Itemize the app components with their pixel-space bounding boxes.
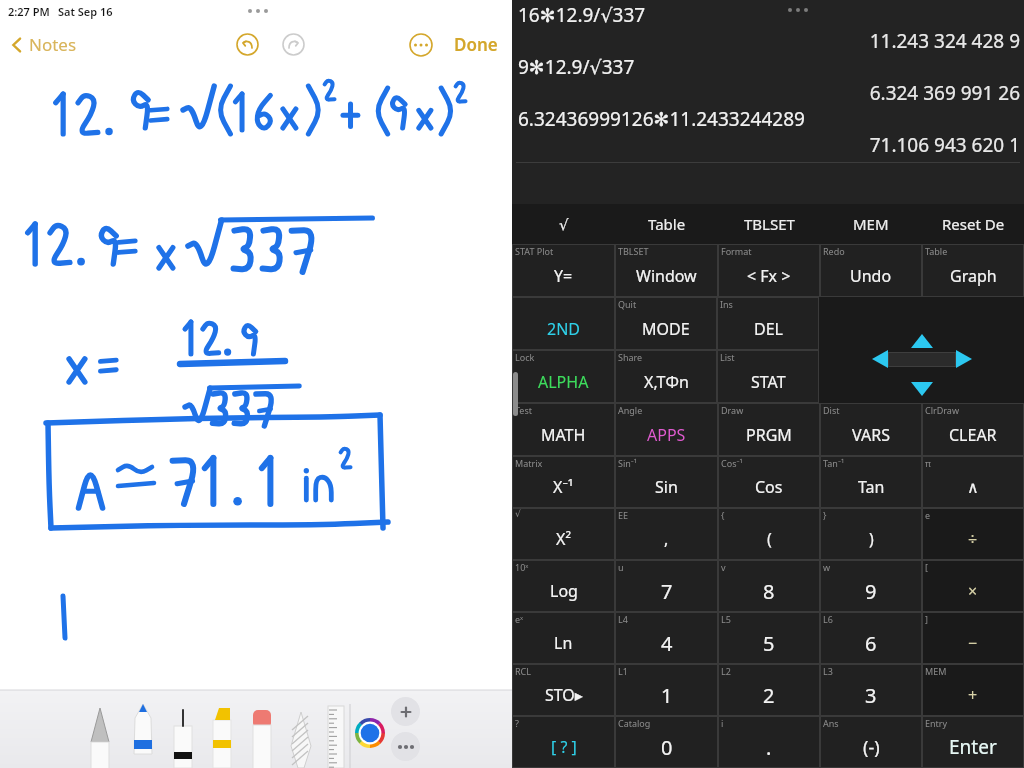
- button[interactable]: Entry: [922, 716, 1024, 768]
- staticText: w: [823, 561, 831, 573]
- button[interactable]: Sin⁻¹: [615, 456, 718, 508]
- staticText: Dist: [823, 404, 840, 416]
- button[interactable]: L6: [820, 612, 922, 664]
- staticText: MEM: [925, 665, 947, 677]
- staticText: L2: [721, 665, 731, 677]
- staticText: ): [869, 528, 874, 550]
- button[interactable]: v: [718, 560, 820, 612]
- button[interactable]: L2: [718, 664, 820, 716]
- staticText: TBLSET: [618, 245, 649, 257]
- staticText: 9: [865, 578, 877, 605]
- button[interactable]: MEM: [922, 664, 1024, 716]
- staticText: [ ? ]: [551, 736, 577, 758]
- staticText: .: [766, 734, 772, 761]
- button[interactable]: Test: [512, 403, 615, 456]
- staticText: ?: [515, 717, 519, 729]
- staticText: MEM: [853, 214, 889, 234]
- staticText: {: [721, 509, 725, 521]
- staticText: ×: [968, 580, 978, 602]
- staticText: PRGM: [746, 424, 792, 446]
- button[interactable]: More: [788, 8, 808, 12]
- button[interactable]: Format: [718, 244, 820, 297]
- button[interactable]: [: [922, 560, 1024, 612]
- button[interactable]: Colour picker: [355, 718, 385, 748]
- button[interactable]: Angle: [615, 403, 718, 456]
- button[interactable]: ]: [922, 612, 1024, 664]
- button[interactable]: eˣ: [512, 612, 615, 664]
- button[interactable]: {: [718, 508, 820, 560]
- staticText: 2ND: [547, 318, 580, 340]
- staticText: RCL: [515, 665, 532, 677]
- staticText: ALPHA: [538, 371, 589, 393]
- button[interactable]: u: [615, 560, 718, 612]
- staticText: u: [618, 561, 624, 573]
- button[interactable]: Cos⁻¹: [718, 456, 820, 508]
- button[interactable]: Quit: [615, 297, 717, 350]
- staticText: 6: [865, 630, 877, 657]
- button[interactable]: List: [717, 350, 819, 403]
- button[interactable]: 10ˣ: [512, 560, 615, 612]
- button[interactable]: }: [820, 508, 922, 560]
- staticText: 1: [661, 682, 673, 709]
- button[interactable]: Notes: [6, 29, 81, 60]
- staticText: Test: [515, 404, 533, 416]
- button[interactable]: e: [922, 508, 1024, 560]
- other: Left: [872, 350, 888, 368]
- button[interactable]: MEM: [820, 204, 922, 244]
- button[interactable]: L3: [820, 664, 922, 716]
- button[interactable]: Matrix: [512, 456, 615, 508]
- staticText: ClrDraw: [925, 404, 959, 416]
- staticText: 8: [763, 578, 775, 605]
- button[interactable]: π: [922, 456, 1024, 508]
- button[interactable]: TBLSET: [718, 204, 820, 244]
- button[interactable]: Share: [615, 350, 717, 403]
- button[interactable]: Table: [922, 244, 1024, 297]
- button[interactable]: More options: [408, 32, 434, 58]
- button[interactable]: Lock: [512, 350, 615, 403]
- button[interactable]: Ans: [820, 716, 922, 768]
- staticText: Ans: [823, 717, 839, 729]
- staticText: 11.243 324 428 9: [516, 28, 1020, 54]
- button[interactable]: EE: [615, 508, 718, 560]
- staticText: (: [767, 528, 772, 550]
- button[interactable]: Done: [452, 31, 500, 58]
- staticText: < Fx >: [747, 265, 791, 287]
- button[interactable]: L1: [615, 664, 718, 716]
- button[interactable]: L5: [718, 612, 820, 664]
- button[interactable]: ClrDraw: [922, 403, 1024, 456]
- staticText: 2:27 PM: [8, 4, 50, 19]
- button[interactable]: Table: [615, 204, 718, 244]
- button[interactable]: ?: [512, 716, 615, 768]
- staticText: Catalog: [618, 717, 651, 729]
- staticText: Done: [454, 33, 498, 56]
- staticText: Notes: [29, 33, 77, 56]
- button[interactable]: TBLSET: [615, 244, 718, 297]
- button[interactable]: 2ND: [512, 297, 615, 350]
- button[interactable]: w: [820, 560, 922, 612]
- button[interactable]: Redo: [280, 31, 306, 57]
- staticText: 4: [661, 630, 673, 657]
- staticText: Format: [721, 245, 752, 257]
- button[interactable]: Tan⁻¹: [820, 456, 922, 508]
- staticText: Sin⁻¹: [618, 457, 638, 469]
- button[interactable]: Reset De: [922, 204, 1024, 244]
- button[interactable]: Draw: [718, 403, 820, 456]
- button[interactable]: L4: [615, 612, 718, 664]
- staticText: Undo: [850, 265, 892, 287]
- button[interactable]: Catalog: [615, 716, 718, 768]
- button[interactable]: More: [391, 732, 420, 761]
- staticText: (-): [863, 735, 880, 760]
- staticText: Log: [550, 580, 578, 602]
- button[interactable]: i: [718, 716, 820, 768]
- button[interactable]: √: [512, 508, 615, 560]
- button[interactable]: STAT Plot: [512, 244, 615, 297]
- button[interactable]: Redo: [820, 244, 922, 297]
- button[interactable]: √: [512, 204, 615, 244]
- button[interactable]: Ins: [717, 297, 819, 350]
- staticText: Sat Sep 16: [58, 4, 113, 19]
- button[interactable]: Undo: [234, 31, 260, 57]
- button[interactable]: Add: [391, 697, 420, 726]
- other: Right: [956, 350, 972, 368]
- button[interactable]: RCL: [512, 664, 615, 716]
- button[interactable]: Dist: [820, 403, 922, 456]
